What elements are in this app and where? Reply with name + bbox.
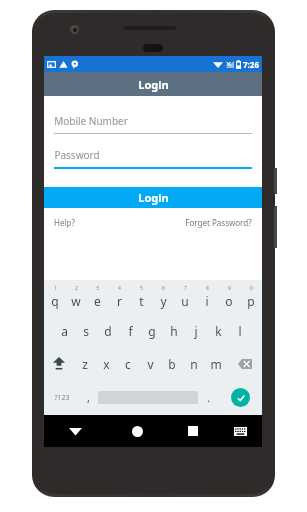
button[interactable]: Enter [231,388,250,407]
button[interactable]: b [161,347,183,380]
button[interactable]: f [119,314,141,347]
staticText: q [51,293,59,309]
button[interactable]: Forget Password? [185,217,252,228]
staticText: r [117,293,122,309]
button[interactable]: a [54,314,75,347]
button[interactable]: 5 [130,280,152,314]
staticText: 2 [75,285,78,292]
button[interactable]: Back [44,415,106,447]
button[interactable]: h [163,314,185,347]
staticText: a [61,323,68,339]
button[interactable]: x [95,347,117,380]
button[interactable]: Login [44,187,262,208]
staticText: 3 [96,285,99,292]
staticText: h [170,323,178,339]
staticText: Mobile Number [54,114,128,128]
staticText: l [238,323,242,339]
button[interactable]: Home [106,415,168,447]
button[interactable]: j [185,314,207,347]
staticText: s [83,323,89,339]
button[interactable]: Help? [54,217,75,228]
staticText: w [71,293,81,309]
staticText: c [125,356,131,372]
staticText: . [207,390,210,405]
button[interactable]: Password [44,148,262,169]
staticText: Help? [54,217,75,228]
staticText: 1 [54,285,57,292]
button[interactable]: m [205,347,227,380]
button[interactable]: 6 [152,280,174,314]
staticText: f [128,323,133,339]
button[interactable]: 2 [65,280,86,314]
button[interactable]: d [97,314,119,347]
staticText: 4 [118,285,121,292]
staticText: 0 [250,285,253,292]
staticText: x [103,356,110,372]
staticText: i [205,293,209,309]
staticText: n [190,356,198,372]
staticText: b [168,356,176,372]
staticText: 7 [184,285,187,292]
staticText: u [181,293,189,309]
button[interactable]: . [198,380,219,415]
staticText: v [147,356,154,372]
button[interactable]: Backspace [227,347,262,380]
staticText: j [194,323,198,339]
staticText: t [139,293,144,309]
button[interactable]: Mobile Number [44,114,262,134]
button[interactable]: v [139,347,161,380]
button[interactable]: l [229,314,251,347]
button[interactable]: c [117,347,139,380]
button[interactable]: , [79,380,98,415]
button[interactable]: s [75,314,97,347]
button[interactable]: 7 [174,280,196,314]
button[interactable]: 9 [218,280,240,314]
button[interactable]: g [141,314,163,347]
button[interactable]: Recents [168,415,218,447]
button[interactable]: 1 [44,280,65,314]
staticText: k [215,323,222,339]
staticText: 7:26 [243,59,259,70]
staticText: Login [138,190,169,205]
staticText: Password [54,148,100,162]
staticText: p [247,293,255,309]
staticText: Login [138,77,169,92]
staticText: g [148,323,156,339]
staticText: 5 [140,285,143,292]
button[interactable]: 3 [86,280,108,314]
staticText: o [225,293,233,309]
staticText: z [82,356,88,372]
button[interactable]: 4 [108,280,130,314]
staticText: 9 [228,285,231,292]
button[interactable]: k [207,314,229,347]
button[interactable]: z [74,347,95,380]
button[interactable]: n [183,347,205,380]
button[interactable]: 0 [240,280,262,314]
button[interactable]: Switch keyboard [218,415,262,447]
staticText: 6 [162,285,165,292]
button[interactable]: Shift [44,347,74,380]
staticText: 8 [206,285,209,292]
button[interactable]: ?123 [44,380,79,415]
staticText: , [87,390,90,405]
staticText: y [160,293,167,309]
staticText: e [94,293,101,309]
staticText: ?123 [54,393,70,403]
staticText: m [210,356,222,372]
staticText: Forget Password? [185,217,252,228]
button[interactable]: 8 [196,280,218,314]
staticText: d [104,323,112,339]
